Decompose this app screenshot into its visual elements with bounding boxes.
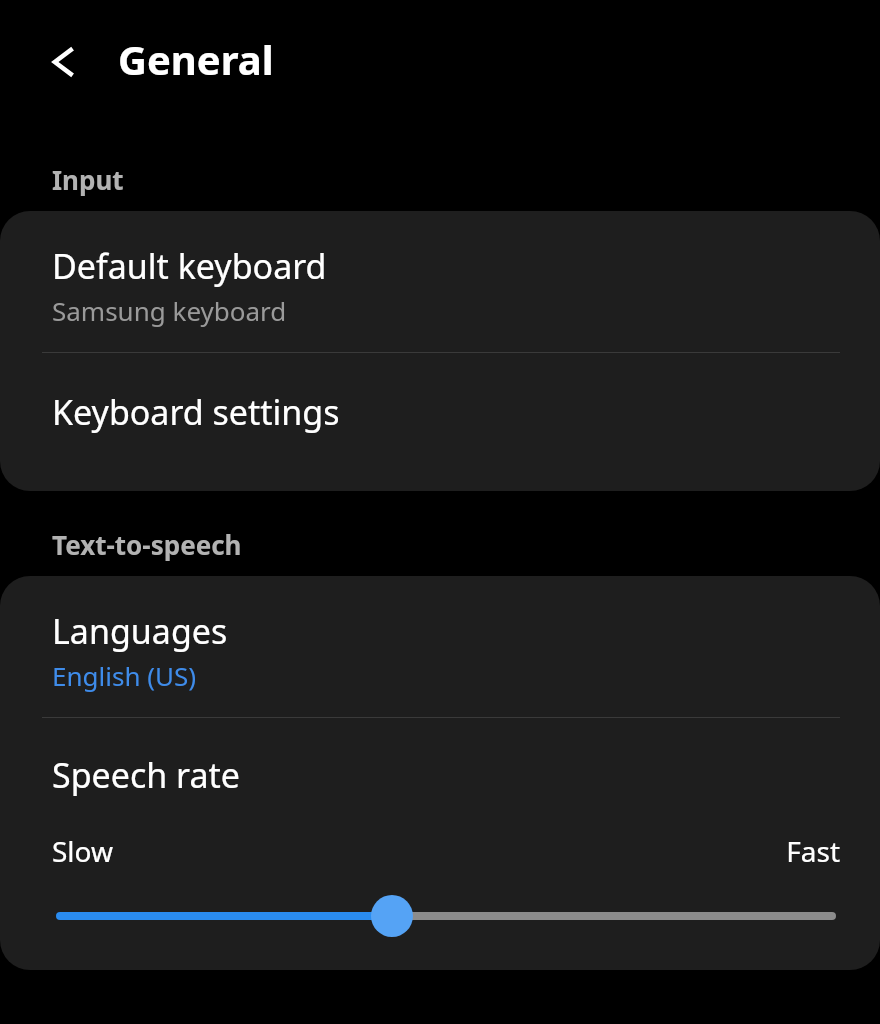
staticText: Samsung keyboard [52, 293, 287, 328]
staticText: Slow [52, 832, 113, 870]
button[interactable]: Back [30, 26, 102, 98]
button[interactable]: Languages [0, 576, 880, 717]
staticText: Text-to-speech [52, 527, 242, 562]
button[interactable]: Speech rate [0, 718, 880, 970]
staticText: Input [52, 162, 124, 197]
staticText: Default keyboard [52, 243, 327, 289]
button[interactable]: Speech rate slider [52, 892, 840, 940]
button[interactable]: Keyboard settings [0, 353, 880, 491]
staticText: General [118, 32, 274, 86]
staticText: English (US) [52, 658, 197, 693]
staticText: Fast [786, 832, 840, 870]
staticText: Languages [52, 608, 228, 654]
button[interactable]: Default keyboard [0, 211, 880, 352]
staticText: Speech rate [52, 752, 240, 798]
staticText: Keyboard settings [52, 389, 340, 435]
